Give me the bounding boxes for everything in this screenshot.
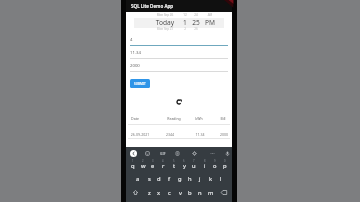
button[interactable]: Clipboard xyxy=(172,148,182,158)
button[interactable]: Emoji xyxy=(142,148,152,158)
button[interactable]: SQL Lite Demo App xyxy=(126,0,232,12)
button[interactable]: Today xyxy=(145,18,185,27)
button[interactable]: l xyxy=(216,172,226,185)
button[interactable]: Backspace xyxy=(218,186,229,198)
staticText: z xyxy=(148,189,151,197)
staticText: 1 xyxy=(132,159,134,163)
button[interactable]: 2 xyxy=(138,158,148,171)
staticText: t xyxy=(173,162,176,170)
button[interactable]: n xyxy=(195,186,205,199)
staticText: 6 xyxy=(183,159,185,163)
button[interactable]: 1 xyxy=(128,158,138,171)
staticText: j xyxy=(199,175,201,183)
button[interactable]: a xyxy=(133,172,143,185)
staticText: l xyxy=(220,175,222,183)
button[interactable]: 2 xyxy=(165,27,205,31)
button[interactable]: 3 xyxy=(148,158,158,171)
button[interactable]: m xyxy=(206,186,216,199)
button[interactable]: j xyxy=(195,172,205,185)
button[interactable]: s xyxy=(144,172,154,185)
staticText: 26 xyxy=(176,27,216,31)
button[interactable]: kWh xyxy=(182,116,216,121)
staticText: f xyxy=(168,175,170,183)
button[interactable]: Voice input xyxy=(222,148,232,158)
staticText: u xyxy=(192,162,196,170)
button[interactable]: 2000 xyxy=(126,59,232,72)
staticText: GIF xyxy=(160,151,166,156)
button[interactable]: 12 xyxy=(165,13,205,17)
button[interactable]: 26-09-2021 xyxy=(123,132,157,137)
staticText: Reading xyxy=(157,116,191,121)
staticText: x xyxy=(157,189,161,197)
staticText: d xyxy=(157,175,161,183)
button[interactable]: More options xyxy=(207,148,217,158)
staticText: SQL Lite Demo App xyxy=(131,3,174,9)
button[interactable]: Shift xyxy=(130,186,141,198)
staticText: q xyxy=(131,162,135,170)
staticText: m xyxy=(208,189,214,197)
staticText: 25 xyxy=(176,18,216,27)
staticText: 2 xyxy=(142,159,144,163)
button[interactable]: h xyxy=(185,172,195,185)
staticText: r xyxy=(162,162,165,170)
button[interactable]: Bill xyxy=(206,116,240,121)
staticText: o xyxy=(213,162,217,170)
button[interactable]: x xyxy=(154,186,164,199)
button[interactable]: Refresh xyxy=(173,96,185,108)
button[interactable]: SUBMIT xyxy=(130,79,150,88)
button[interactable]: GIF xyxy=(158,148,168,158)
staticText: AM xyxy=(190,13,230,17)
button[interactable]: 7 xyxy=(189,158,199,171)
staticText: Mon Sep 27 xyxy=(145,27,185,31)
button[interactable]: b xyxy=(185,186,195,199)
staticText: k xyxy=(209,175,213,183)
staticText: 9 xyxy=(214,159,216,163)
staticText: g xyxy=(178,175,182,183)
button[interactable]: 11.34 xyxy=(126,46,232,59)
button[interactable]: Date xyxy=(118,116,152,121)
staticText: Today xyxy=(145,18,185,27)
staticText: Mon Sep 26 xyxy=(145,13,185,17)
staticText: y xyxy=(183,162,186,170)
staticText: 11.34 xyxy=(130,49,141,55)
button[interactable]: Settings xyxy=(189,148,199,158)
staticText: Bill xyxy=(206,116,240,121)
button[interactable]: 8 xyxy=(200,158,210,171)
button[interactable]: z xyxy=(144,186,154,199)
button[interactable]: 25 xyxy=(176,18,216,27)
button[interactable]: f xyxy=(164,172,174,185)
button[interactable]: 11.34 xyxy=(183,132,217,137)
staticText: 11.34 xyxy=(183,132,217,137)
staticText: 12 xyxy=(165,13,205,17)
button[interactable]: c xyxy=(164,186,174,199)
staticText: kWh xyxy=(182,116,216,121)
button[interactable]: Close keyboard xyxy=(128,148,138,158)
button[interactable]: v xyxy=(175,186,185,199)
button[interactable]: Reading xyxy=(157,116,191,121)
staticText: h xyxy=(188,175,192,183)
staticText: w xyxy=(141,162,146,170)
button[interactable]: Mon Sep 26 xyxy=(145,13,185,17)
button[interactable]: 4 xyxy=(126,33,232,46)
staticText: 2 xyxy=(165,27,205,31)
button[interactable]: k xyxy=(206,172,216,185)
button[interactable]: 2000 xyxy=(207,132,241,137)
button[interactable]: 24 xyxy=(176,13,216,17)
button[interactable]: g xyxy=(175,172,185,185)
button[interactable]: AM xyxy=(190,13,230,17)
button[interactable]: 4 xyxy=(158,158,168,171)
staticText: a xyxy=(136,175,140,183)
staticText: 26-09-2021 xyxy=(123,132,157,137)
staticText: c xyxy=(168,189,171,197)
staticText: Date xyxy=(118,116,152,121)
button[interactable]: Mon Sep 27 xyxy=(145,27,185,31)
button[interactable]: 0 xyxy=(220,158,230,171)
button[interactable]: PM xyxy=(190,18,230,27)
button[interactable]: 9 xyxy=(210,158,220,171)
button[interactable]: 1 xyxy=(165,18,205,27)
button[interactable]: 2344 xyxy=(153,132,187,137)
button[interactable]: 26 xyxy=(176,27,216,31)
button[interactable]: d xyxy=(154,172,164,185)
button[interactable]: 5 xyxy=(169,158,179,171)
button[interactable]: 6 xyxy=(179,158,189,171)
